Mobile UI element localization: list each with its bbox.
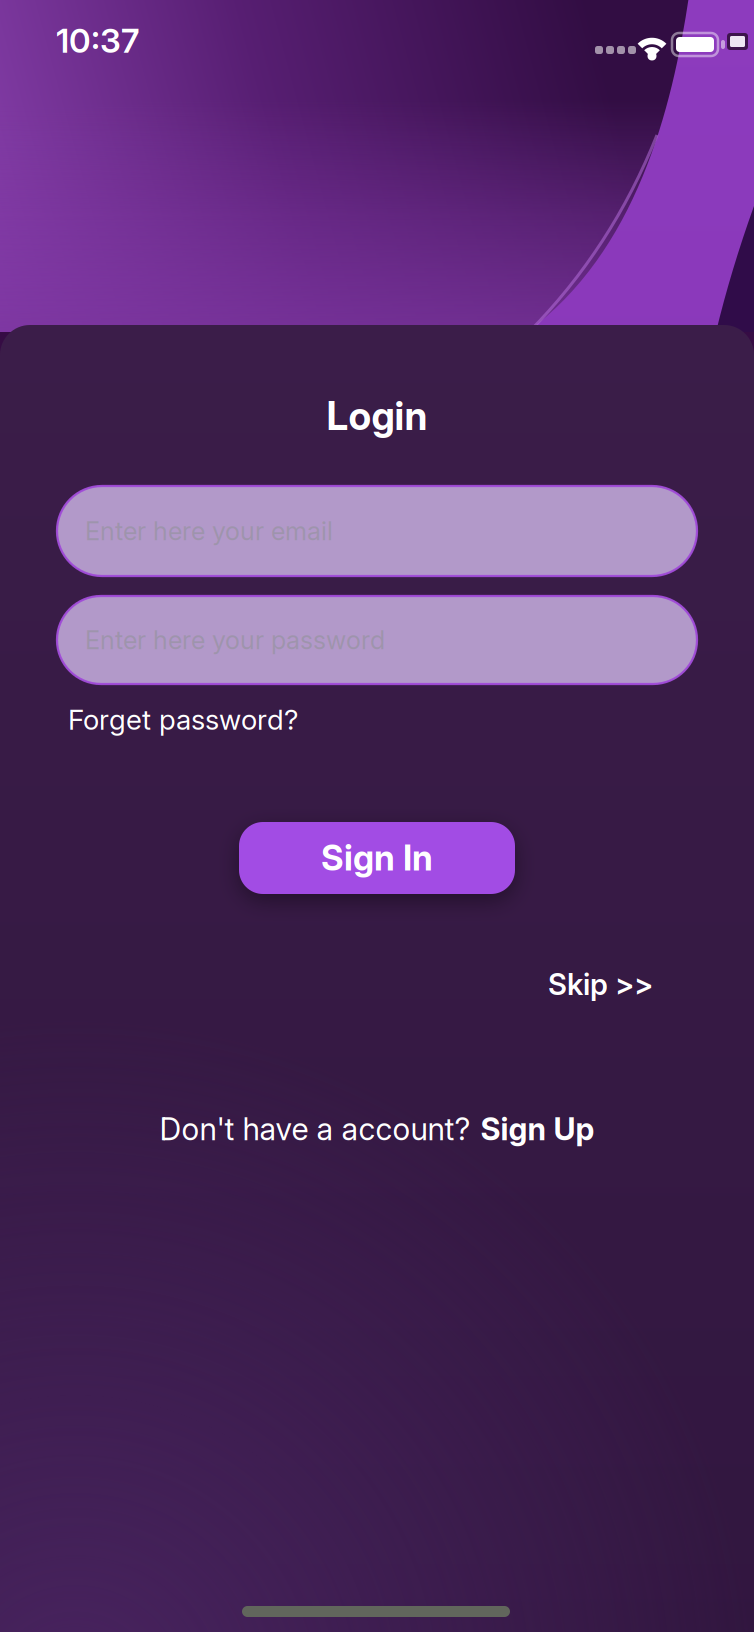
staticText: Don't have a account?	[159, 1111, 470, 1147]
staticText: Enter here your email	[85, 516, 333, 546]
staticText: Skip >>	[548, 967, 653, 1002]
staticText: Forget password?	[68, 703, 298, 736]
button[interactable]: Enter here your password	[57, 596, 697, 684]
staticText: Sign Up	[480, 1111, 594, 1147]
button[interactable]: Enter here your email	[57, 486, 697, 576]
staticText: Login	[326, 393, 427, 439]
button[interactable]: Skip >>	[548, 967, 653, 1002]
staticText: Sign In	[321, 838, 433, 878]
button[interactable]: Don't have a account?	[159, 1111, 594, 1147]
button[interactable]: Forget password?	[68, 703, 298, 736]
button[interactable]: Sign In	[239, 822, 515, 894]
staticText: 10:37	[56, 21, 139, 60]
staticText: Enter here your password	[85, 625, 385, 655]
